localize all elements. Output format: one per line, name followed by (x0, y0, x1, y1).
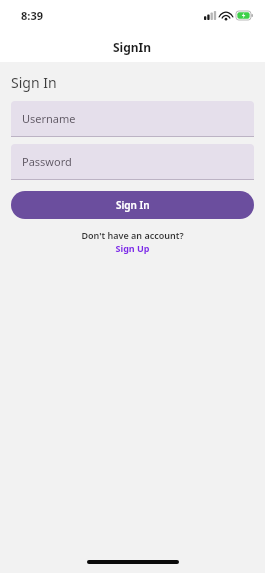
staticText: Password (22, 154, 72, 169)
button[interactable]: Username (11, 101, 254, 137)
button[interactable]: Sign Up (115, 242, 150, 254)
staticText: SignIn (113, 39, 152, 55)
staticText: Don't have an account? (81, 229, 184, 241)
staticText: Sign In (116, 198, 150, 212)
staticText: Username (22, 111, 76, 126)
staticText: 8:39 (21, 8, 43, 23)
button[interactable]: Password (11, 144, 254, 180)
button[interactable]: Sign In (11, 191, 254, 219)
staticText: Sign Up (115, 242, 150, 254)
staticText: Sign In (11, 73, 57, 92)
